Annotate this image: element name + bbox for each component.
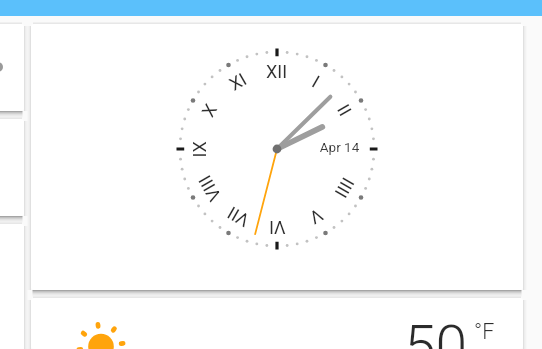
button[interactable]	[0, 24, 24, 111]
other: Analog clock, 2:08, Apr 14	[176, 48, 378, 250]
button[interactable]: Sunny, clear sky	[31, 298, 523, 349]
staticText: 50	[404, 313, 468, 349]
button[interactable]: Analog clock, 2:08, Apr 14	[31, 24, 523, 290]
other: Sunny, clear sky	[75, 321, 127, 349]
staticText: °F	[474, 319, 495, 344]
